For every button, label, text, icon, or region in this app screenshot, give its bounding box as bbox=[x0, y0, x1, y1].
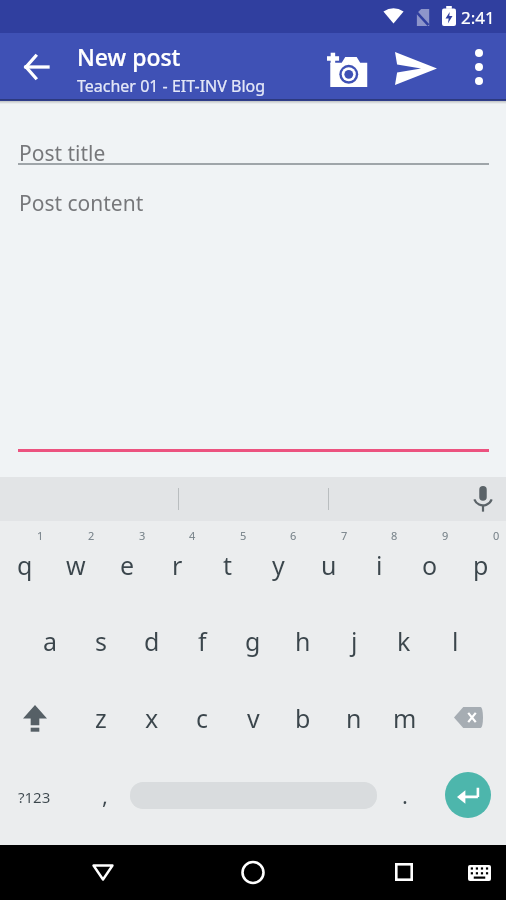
staticText: 3 bbox=[139, 528, 146, 543]
button[interactable]: ?123 bbox=[18, 787, 51, 807]
staticText: 7 bbox=[341, 528, 348, 543]
staticText: y bbox=[272, 548, 285, 582]
button[interactable]: z bbox=[76, 694, 126, 742]
button[interactable]: u bbox=[304, 541, 354, 589]
button[interactable]: w bbox=[51, 541, 101, 589]
staticText: 8 bbox=[391, 528, 398, 543]
staticText: 1 bbox=[37, 528, 44, 543]
button[interactable]: q bbox=[0, 541, 50, 589]
button[interactable]: r bbox=[152, 541, 202, 589]
button[interactable] bbox=[228, 848, 276, 896]
staticText: r bbox=[172, 548, 183, 582]
staticText: k bbox=[397, 624, 411, 658]
staticText: 9 bbox=[442, 528, 449, 543]
staticText: p bbox=[473, 548, 489, 582]
staticText: 2 bbox=[88, 528, 95, 543]
button[interactable]: a bbox=[25, 617, 75, 665]
staticText: i bbox=[376, 548, 383, 582]
button[interactable]: y bbox=[253, 541, 303, 589]
staticText: b bbox=[295, 701, 311, 735]
staticText: New post bbox=[77, 41, 181, 72]
staticText: 4 bbox=[189, 528, 196, 543]
staticText: l bbox=[452, 624, 459, 658]
button[interactable] bbox=[380, 848, 428, 896]
button[interactable]: i bbox=[354, 541, 404, 589]
button[interactable]: n bbox=[329, 694, 379, 742]
button[interactable]: v bbox=[228, 694, 278, 742]
button[interactable]: . bbox=[380, 771, 430, 819]
staticText: s bbox=[95, 624, 107, 658]
staticText: g bbox=[245, 624, 261, 658]
staticText: e bbox=[120, 548, 135, 582]
button[interactable]: , bbox=[80, 771, 130, 819]
staticText: , bbox=[102, 780, 108, 810]
button[interactable]: x bbox=[127, 694, 177, 742]
button[interactable] bbox=[79, 848, 127, 896]
button[interactable]: p bbox=[456, 541, 506, 589]
staticText: m bbox=[393, 701, 417, 735]
button[interactable]: h bbox=[278, 617, 328, 665]
button[interactable]: g bbox=[228, 617, 278, 665]
staticText: o bbox=[422, 548, 438, 582]
staticText: z bbox=[95, 701, 107, 735]
staticText: Teacher 01 - EIT-INV Blog bbox=[77, 75, 266, 97]
staticText: q bbox=[17, 548, 33, 582]
button[interactable]: c bbox=[177, 694, 227, 742]
button[interactable] bbox=[458, 852, 500, 894]
staticText: h bbox=[295, 624, 311, 658]
button[interactable]: e bbox=[102, 541, 152, 589]
button[interactable]: m bbox=[380, 694, 430, 742]
staticText: . bbox=[402, 780, 408, 810]
button[interactable] bbox=[392, 45, 440, 93]
staticText: 2:41 bbox=[461, 6, 495, 29]
button[interactable] bbox=[323, 47, 371, 95]
button[interactable] bbox=[11, 694, 59, 742]
staticText: 6 bbox=[290, 528, 297, 543]
button[interactable]: Post content bbox=[19, 189, 144, 218]
button[interactable] bbox=[14, 55, 62, 103]
button[interactable]: f bbox=[177, 617, 227, 665]
button[interactable]: o bbox=[405, 541, 455, 589]
button[interactable]: b bbox=[278, 694, 328, 742]
staticText: c bbox=[196, 701, 209, 735]
staticText: 0 bbox=[493, 528, 500, 543]
staticText: a bbox=[43, 624, 58, 658]
staticText: f bbox=[198, 624, 207, 658]
staticText: 5 bbox=[240, 528, 247, 543]
staticText: n bbox=[346, 701, 362, 735]
button[interactable] bbox=[461, 477, 505, 521]
staticText: d bbox=[144, 624, 160, 658]
staticText: v bbox=[247, 701, 260, 735]
staticText: t bbox=[223, 548, 233, 582]
button[interactable]: s bbox=[76, 617, 126, 665]
button[interactable]: j bbox=[329, 617, 379, 665]
staticText: x bbox=[145, 701, 159, 735]
button[interactable] bbox=[444, 694, 492, 742]
button[interactable]: l bbox=[430, 617, 480, 665]
staticText: u bbox=[321, 548, 337, 582]
button[interactable] bbox=[456, 45, 500, 89]
staticText: w bbox=[66, 548, 86, 582]
button[interactable]: k bbox=[379, 617, 429, 665]
button[interactable]: t bbox=[203, 541, 253, 589]
button[interactable]: d bbox=[127, 617, 177, 665]
staticText: j bbox=[351, 624, 358, 658]
button[interactable]: Post title bbox=[19, 139, 106, 168]
button[interactable] bbox=[445, 772, 491, 818]
